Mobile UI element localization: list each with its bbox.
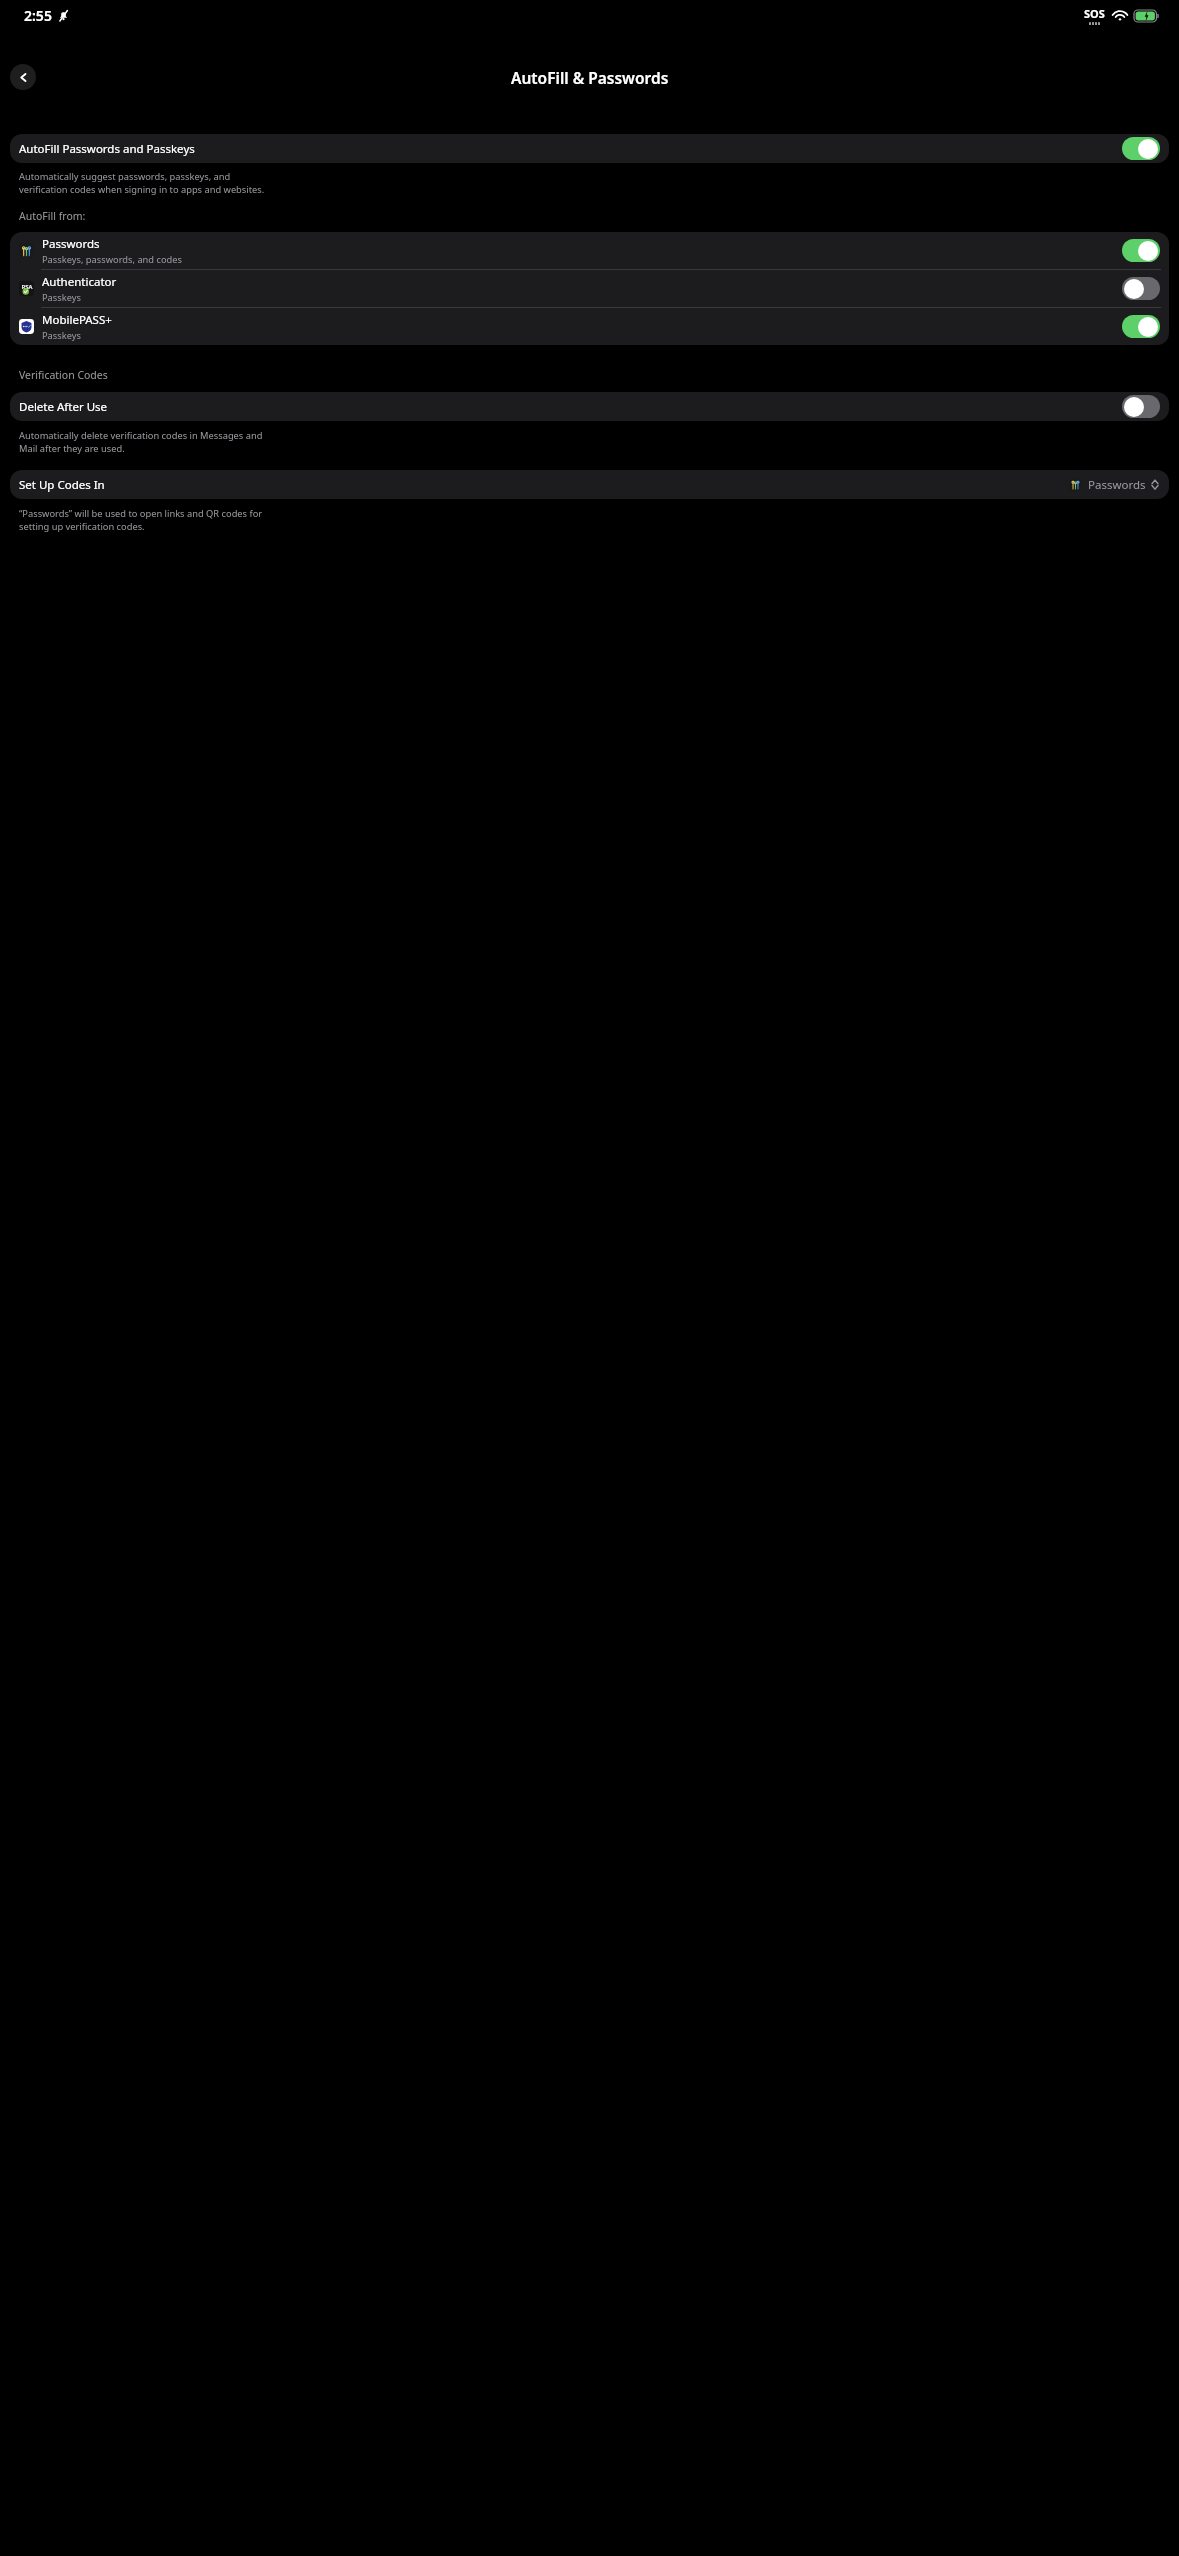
staticText: Passwords xyxy=(42,236,100,252)
staticText: Passwords xyxy=(1088,477,1146,493)
button[interactable]: On xyxy=(1122,239,1160,262)
staticText: “Passwords” will be used to open links a… xyxy=(19,507,263,533)
staticText: Delete After Use xyxy=(19,399,108,415)
staticText: Passkeys xyxy=(42,329,81,342)
staticText: Verification Codes xyxy=(19,368,108,382)
staticText: AutoFill & Passwords xyxy=(511,67,669,88)
button[interactable]: RSA xyxy=(10,270,1169,307)
button[interactable]: Passwords xyxy=(10,232,1169,269)
button[interactable]: AutoFill Passwords and Passkeys xyxy=(10,134,1169,163)
button[interactable]: Back xyxy=(10,64,36,90)
button[interactable]: On xyxy=(1122,315,1160,338)
button[interactable]: MobilePASS+ xyxy=(10,308,1169,345)
staticText: Set Up Codes In xyxy=(19,477,105,493)
staticText: MobilePASS+ xyxy=(42,312,112,328)
staticText: Authenticator xyxy=(42,274,117,290)
staticText: Passkeys, passwords, and codes xyxy=(42,253,182,266)
staticText: Passkeys xyxy=(42,291,81,304)
button[interactable]: Off xyxy=(1122,277,1160,300)
button[interactable]: Off xyxy=(1122,395,1160,418)
button[interactable]: Set Up Codes In xyxy=(10,470,1169,499)
button[interactable]: Delete After Use xyxy=(10,392,1169,421)
staticText: RSA xyxy=(21,283,33,291)
staticText: 2:55 xyxy=(24,6,52,25)
staticText: Automatically suggest passwords, passkey… xyxy=(19,170,265,196)
staticText: AutoFill from: xyxy=(19,209,86,223)
staticText: AutoFill Passwords and Passkeys xyxy=(19,141,195,157)
staticText: Automatically delete verification codes … xyxy=(19,429,263,455)
button[interactable]: On xyxy=(1122,137,1160,160)
staticText: SOS xyxy=(1084,6,1105,21)
